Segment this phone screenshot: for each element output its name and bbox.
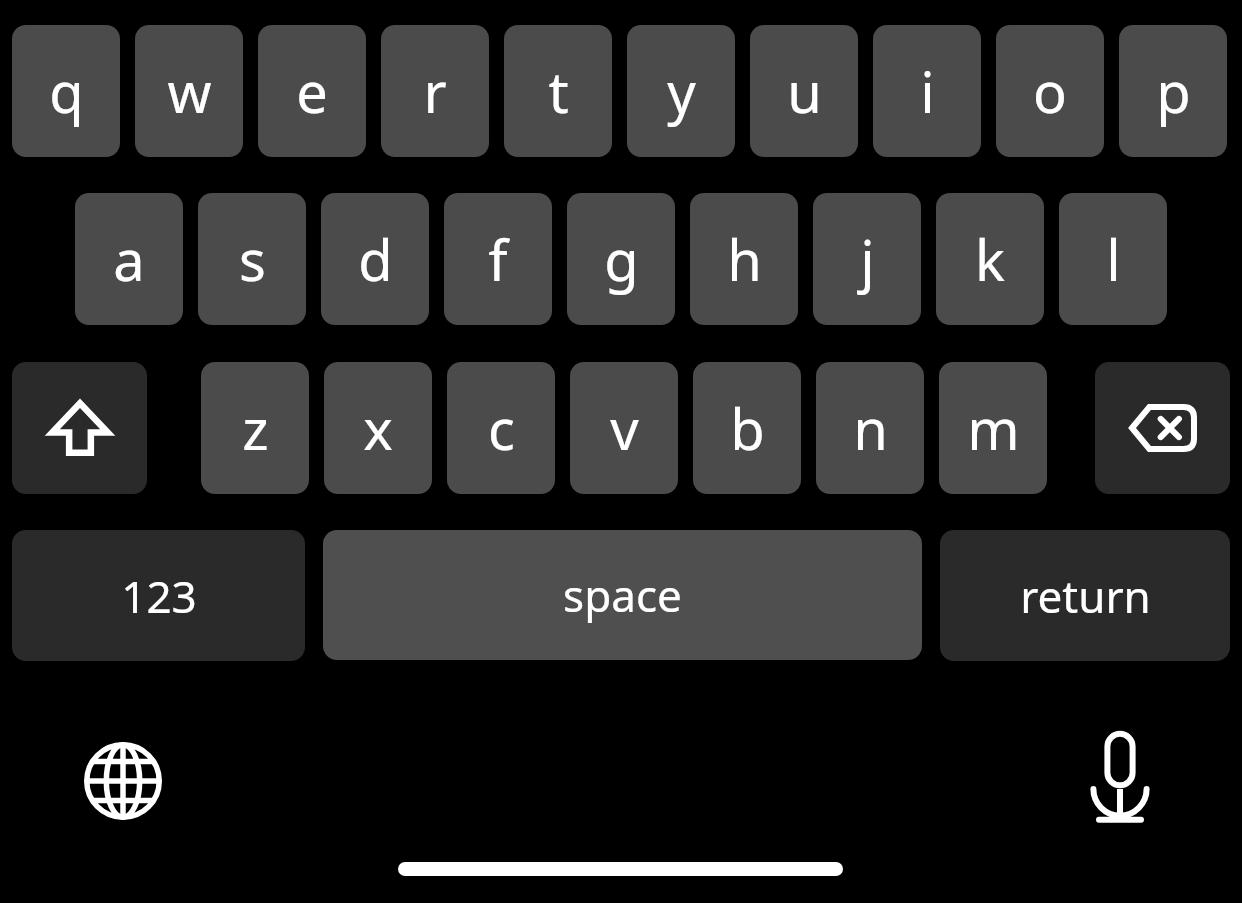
staticText: o <box>1033 53 1067 129</box>
button[interactable]: c <box>447 362 555 494</box>
staticText: u <box>787 53 822 129</box>
staticText: return <box>1020 566 1151 626</box>
staticText: y <box>667 53 696 129</box>
staticText: space <box>563 565 682 625</box>
staticText: q <box>49 53 84 129</box>
staticText: j <box>860 221 875 297</box>
staticText: e <box>296 53 328 129</box>
button[interactable]: i <box>873 25 981 157</box>
staticText: z <box>242 390 269 466</box>
button[interactable]: r <box>381 25 489 157</box>
button[interactable]: s <box>198 193 306 325</box>
staticText: f <box>488 221 508 297</box>
button[interactable]: z <box>201 362 309 494</box>
staticText: x <box>363 390 393 466</box>
staticText: s <box>239 221 266 297</box>
button[interactable]: h <box>690 193 798 325</box>
staticText: w <box>167 53 212 129</box>
button[interactable]: u <box>750 25 858 157</box>
staticText: i <box>920 53 935 129</box>
button[interactable]: m <box>939 362 1047 494</box>
staticText: v <box>610 390 639 466</box>
button[interactable]: n <box>816 362 924 494</box>
button[interactable]: space <box>323 530 922 660</box>
button[interactable]: k <box>936 193 1044 325</box>
button[interactable]: p <box>1119 25 1227 157</box>
button[interactable]: b <box>693 362 801 494</box>
staticText: k <box>975 221 1005 297</box>
staticText: 123 <box>121 566 197 626</box>
button[interactable]: x <box>324 362 432 494</box>
button[interactable]: f <box>444 193 552 325</box>
staticText: l <box>1106 221 1121 297</box>
staticText: a <box>113 221 145 297</box>
button[interactable]: o <box>996 25 1104 157</box>
staticText: n <box>853 390 888 466</box>
button[interactable]: d <box>321 193 429 325</box>
button[interactable]: e <box>258 25 366 157</box>
button[interactable]: q <box>12 25 120 157</box>
staticText: h <box>727 221 762 297</box>
button[interactable]: a <box>75 193 183 325</box>
button[interactable]: j <box>813 193 921 325</box>
button[interactable]: 123 <box>12 530 305 661</box>
button[interactable]: l <box>1059 193 1167 325</box>
button[interactable]: y <box>627 25 735 157</box>
staticText: m <box>967 390 1020 466</box>
button[interactable]: Dictate <box>1073 728 1167 828</box>
button[interactable]: t <box>504 25 612 157</box>
button[interactable]: Switch keyboard language <box>76 734 170 828</box>
staticText: t <box>548 53 569 129</box>
button[interactable]: Shift <box>12 362 147 494</box>
staticText: c <box>488 390 515 466</box>
staticText: d <box>358 221 393 297</box>
staticText: b <box>730 390 765 466</box>
staticText: r <box>423 53 447 129</box>
button[interactable]: v <box>570 362 678 494</box>
button[interactable]: g <box>567 193 675 325</box>
staticText: g <box>604 221 639 297</box>
button[interactable]: Backspace <box>1095 362 1230 494</box>
staticText: p <box>1156 53 1191 129</box>
button[interactable]: return <box>940 530 1230 661</box>
button[interactable]: w <box>135 25 243 157</box>
